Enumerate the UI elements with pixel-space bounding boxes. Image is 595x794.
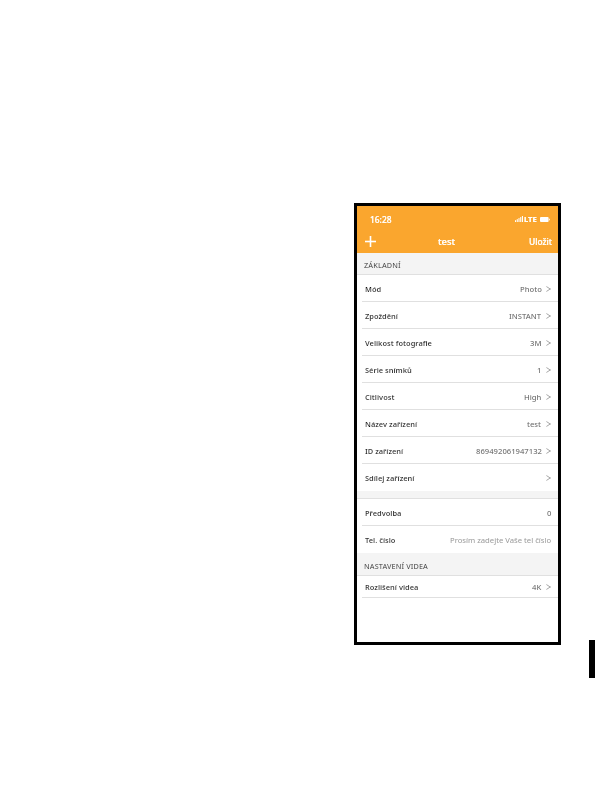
button[interactable]: test: [434, 232, 460, 251]
button[interactable]: Add device: [358, 230, 382, 253]
button[interactable]: Název zařízení: [357, 410, 558, 437]
staticText: Název zařízení: [365, 419, 418, 429]
staticText: ID zařízení: [365, 446, 404, 456]
staticText: Citlivost: [365, 392, 395, 402]
staticText: Prosím zadejte Vaše tel číslo: [450, 535, 552, 545]
button[interactable]: Velikost fotografie: [357, 329, 558, 356]
staticText: Mód: [365, 284, 382, 294]
staticText: ZÁKLADNÍ: [364, 260, 401, 270]
staticText: 16:28: [370, 214, 392, 225]
staticText: 1: [537, 365, 542, 375]
staticText: 0: [547, 508, 552, 518]
staticText: 869492061947132: [476, 446, 542, 456]
staticText: Zpoždění: [365, 311, 398, 321]
staticText: NASTAVENÍ VIDEA: [364, 561, 428, 571]
staticText: test: [527, 419, 542, 429]
staticText: Série snímků: [365, 365, 412, 375]
button[interactable]: Zpoždění: [357, 302, 558, 329]
button[interactable]: Citlivost: [357, 383, 558, 410]
button[interactable]: Předvolba: [357, 499, 558, 526]
button[interactable]: Mód: [357, 275, 558, 302]
staticText: High: [524, 392, 542, 402]
staticText: Předvolba: [365, 508, 402, 518]
staticText: Rozlišení videa: [365, 582, 419, 592]
staticText: INSTANT: [509, 311, 542, 321]
staticText: test: [438, 235, 456, 248]
staticText: Tel. číslo: [365, 535, 396, 545]
staticText: Photo: [520, 284, 542, 294]
button[interactable]: Uložit: [523, 233, 558, 250]
staticText: Uložit: [529, 236, 552, 247]
button[interactable]: ID zařízení: [357, 437, 558, 464]
staticText: 4K: [532, 582, 542, 592]
staticText: Sdílej zařízení: [365, 473, 415, 483]
staticText: 3M: [530, 338, 542, 348]
staticText: Velikost fotografie: [365, 338, 432, 348]
button[interactable]: Rozlišení videa: [357, 576, 558, 598]
button[interactable]: Série snímků: [357, 356, 558, 383]
button[interactable]: Tel. číslo: [357, 526, 558, 553]
button[interactable]: Sdílej zařízení: [357, 464, 558, 491]
staticText: LTE: [524, 214, 537, 224]
